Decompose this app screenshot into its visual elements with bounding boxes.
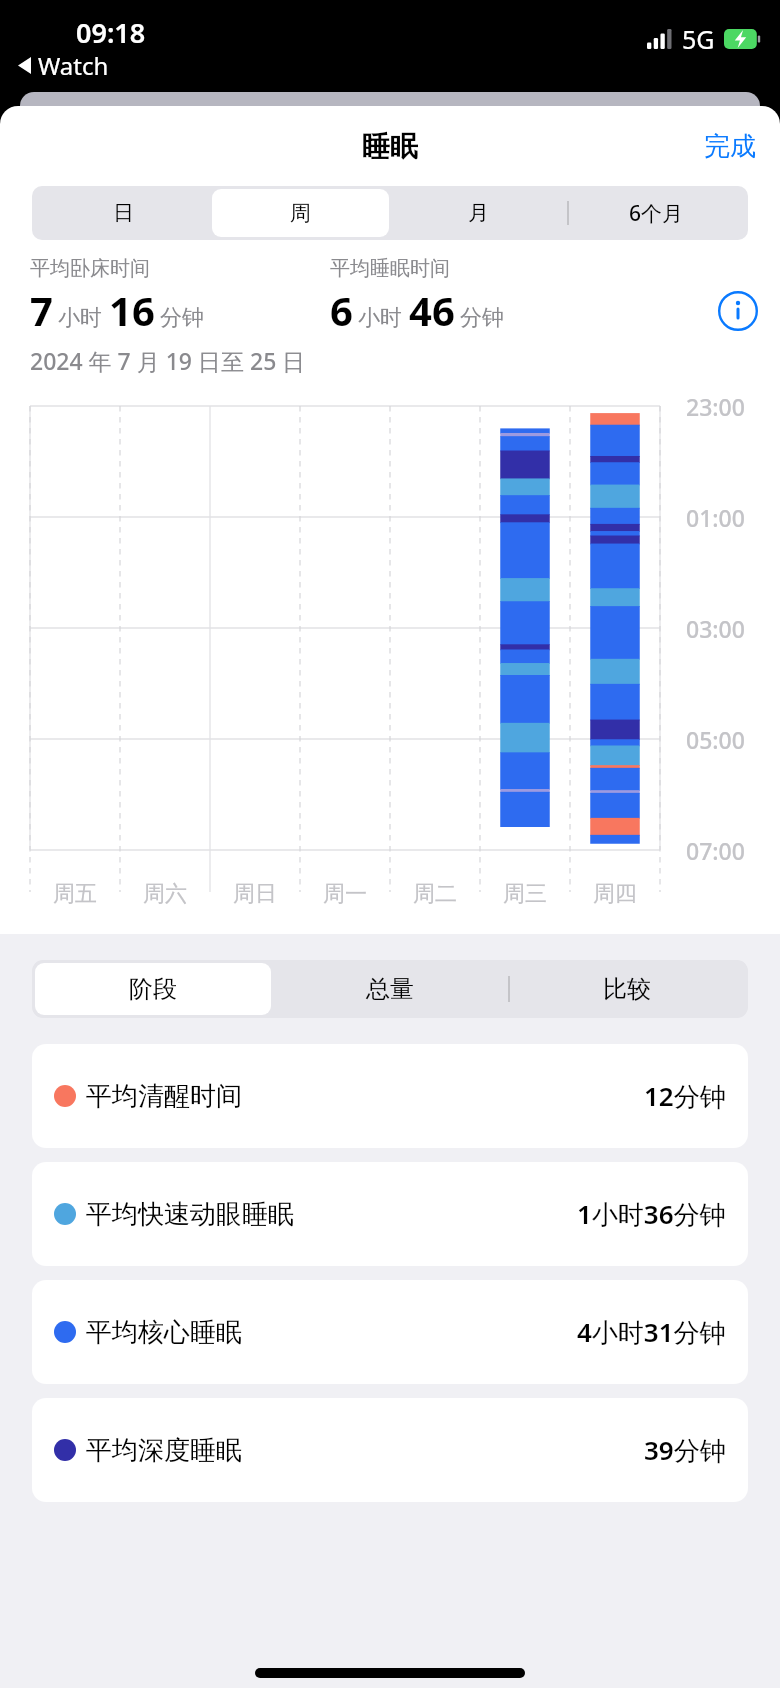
staticText: 05:00 xyxy=(686,724,745,755)
staticText: 5G xyxy=(682,22,715,56)
button[interactable]: 总量 xyxy=(271,963,508,1015)
staticText: 39分钟 xyxy=(644,1432,726,1468)
button[interactable]: 月 xyxy=(389,189,567,237)
staticText: 周三 xyxy=(503,880,547,908)
staticText: 总量 xyxy=(366,974,414,1004)
staticText: 周二 xyxy=(413,880,457,908)
staticText: 周五 xyxy=(53,880,97,908)
staticText: 2024 年 7 月 19 日至 25 日 xyxy=(30,345,306,376)
staticText: 平均深度睡眠 xyxy=(86,1434,242,1467)
button[interactable]: 平均核心睡眠 xyxy=(32,1280,748,1384)
staticText: 1小时36分钟 xyxy=(577,1196,726,1232)
staticText: 分钟 xyxy=(460,304,504,332)
staticText: 阶段 xyxy=(129,974,177,1004)
staticText: 4小时31分钟 xyxy=(577,1314,726,1350)
staticText: 23:00 xyxy=(686,391,745,422)
button[interactable]: 平均深度睡眠 xyxy=(32,1398,748,1502)
staticText: 01:00 xyxy=(686,502,745,533)
staticText: 07:00 xyxy=(686,835,745,866)
staticText: 周六 xyxy=(143,880,187,908)
staticText: 平均核心睡眠 xyxy=(86,1316,242,1349)
staticText: 日 xyxy=(113,200,134,226)
staticText: 分钟 xyxy=(160,304,204,332)
staticText: 周一 xyxy=(323,880,367,908)
button[interactable]: 平均清醒时间 xyxy=(32,1044,748,1148)
staticText: 平均快速动眼睡眠 xyxy=(86,1198,294,1231)
button[interactable]: Watch xyxy=(12,47,115,84)
button[interactable]: 日 xyxy=(35,189,212,237)
staticText: 6 xyxy=(330,283,353,337)
staticText: 平均睡眠时间 xyxy=(330,256,450,281)
staticText: 完成 xyxy=(704,130,756,163)
staticText: 周四 xyxy=(593,880,637,908)
staticText: 12分钟 xyxy=(644,1078,726,1114)
button[interactable]: 完成 xyxy=(680,118,780,175)
staticText: 小时 xyxy=(358,304,402,332)
button[interactable]: 比较 xyxy=(508,963,745,1015)
button[interactable]: Information xyxy=(716,289,760,333)
staticText: 46 xyxy=(409,283,455,337)
staticText: Watch xyxy=(38,49,109,82)
staticText: 月 xyxy=(468,200,489,226)
staticText: 6个月 xyxy=(629,199,684,228)
staticText: 小时 xyxy=(58,304,102,332)
staticText: 03:00 xyxy=(686,613,745,644)
button[interactable]: 周 xyxy=(212,189,389,237)
staticText: 7 xyxy=(30,283,53,337)
staticText: 周 xyxy=(290,200,311,226)
staticText: 平均清醒时间 xyxy=(86,1080,242,1113)
button[interactable]: 6个月 xyxy=(567,189,745,237)
staticText: 比较 xyxy=(603,974,651,1004)
button[interactable]: 阶段 xyxy=(35,963,271,1015)
staticText: 16 xyxy=(109,283,155,337)
staticText: 睡眠 xyxy=(362,129,418,164)
staticText: 平均卧床时间 xyxy=(30,256,150,281)
button[interactable]: 平均快速动眼睡眠 xyxy=(32,1162,748,1266)
staticText: 09:18 xyxy=(76,14,146,51)
staticText: 周日 xyxy=(233,880,277,908)
